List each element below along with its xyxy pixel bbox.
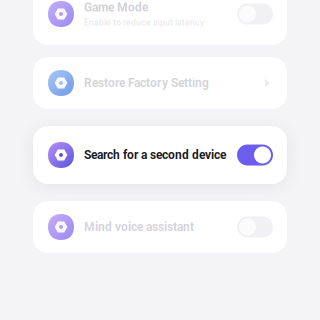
- staticText: Mind voice assistant: [84, 220, 194, 234]
- staticText: Search for a second device: [84, 148, 226, 162]
- button[interactable]: Search for a second device: [33, 126, 287, 184]
- staticText: Enable to reduce input latency: [84, 17, 204, 28]
- button[interactable]: Mind voice assistant: [33, 201, 287, 253]
- button[interactable]: Game Mode: [33, 0, 287, 45]
- staticText: Game Mode: [84, 0, 148, 14]
- staticText: Restore Factory Setting: [84, 76, 209, 90]
- button[interactable]: Restore Factory Setting: [33, 57, 287, 109]
